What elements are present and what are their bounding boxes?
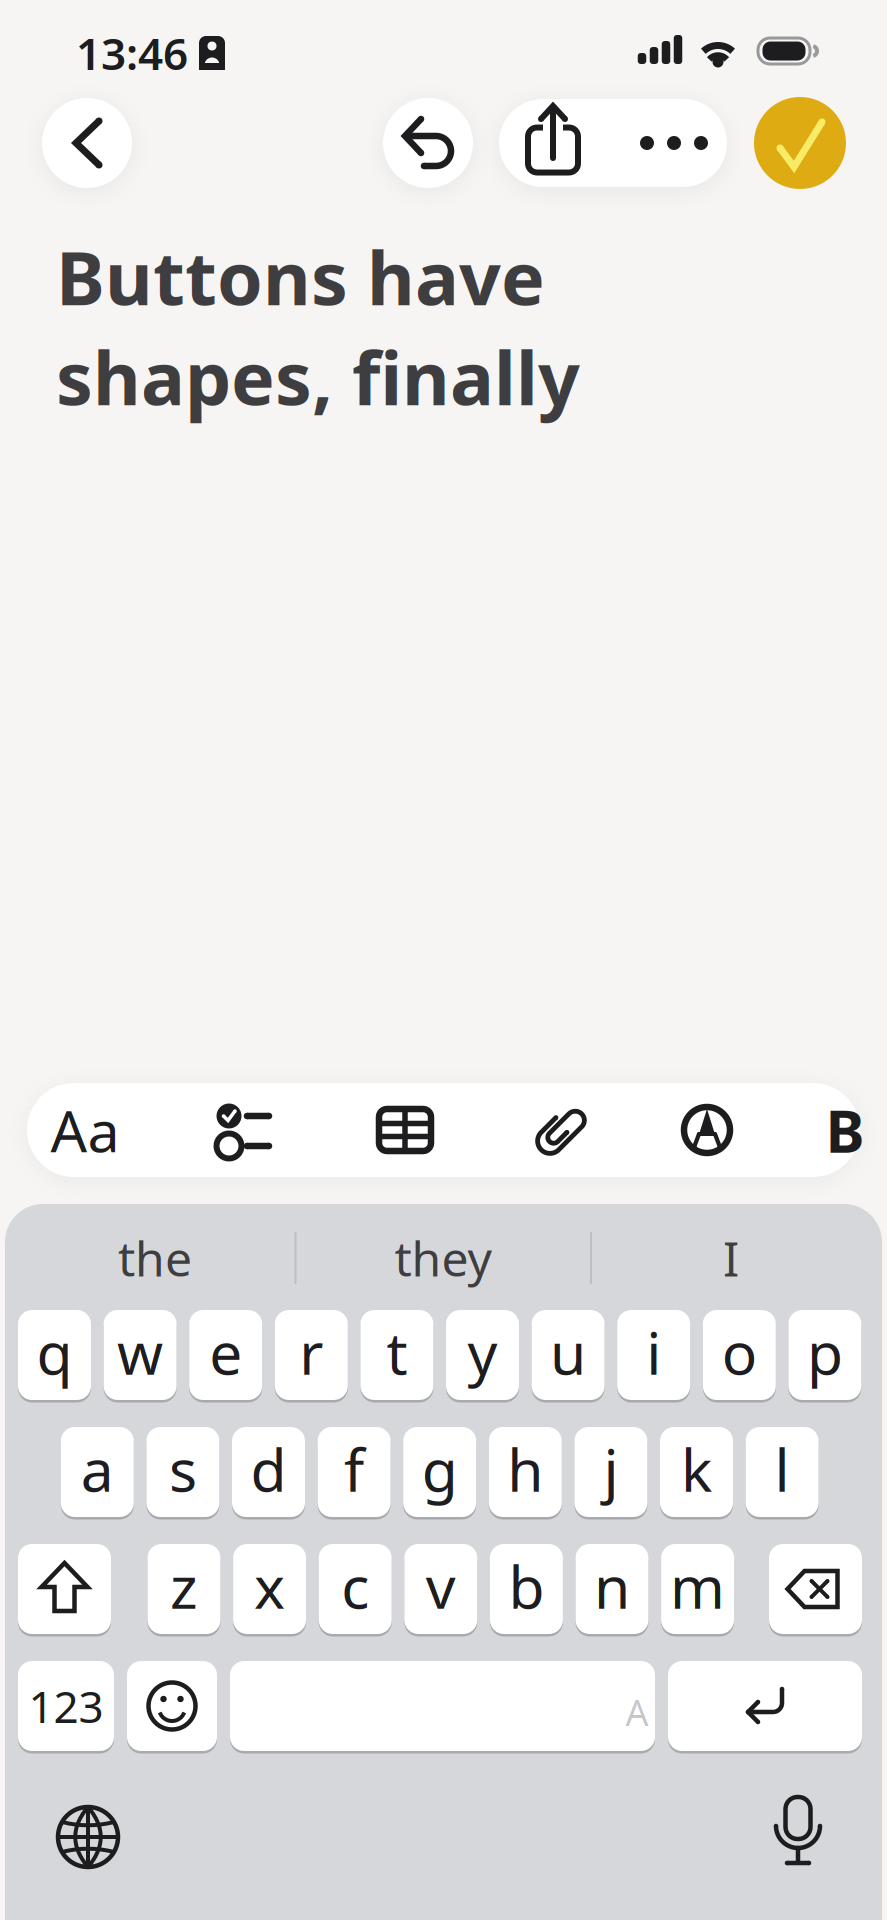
staticText: j xyxy=(603,1430,618,1508)
staticText: they xyxy=(394,1226,491,1290)
staticText: k xyxy=(681,1430,712,1508)
staticText: I xyxy=(723,1226,739,1290)
staticText: g xyxy=(422,1430,458,1508)
staticText: h xyxy=(507,1430,543,1508)
staticText: u xyxy=(550,1313,586,1391)
staticText: f xyxy=(344,1430,364,1508)
staticText: Buttons have xyxy=(56,228,545,325)
staticText: p xyxy=(807,1313,843,1391)
staticText: a xyxy=(81,1430,114,1508)
staticText: q xyxy=(36,1313,72,1391)
staticText: b xyxy=(508,1547,544,1625)
staticText: w xyxy=(117,1313,163,1391)
staticText: l xyxy=(775,1430,790,1508)
staticText: 13:46 xyxy=(76,24,188,82)
staticText: the xyxy=(118,1226,192,1290)
staticText: r xyxy=(299,1313,323,1391)
staticText: x xyxy=(254,1547,285,1625)
staticText: shapes, finally xyxy=(56,328,580,425)
staticText: z xyxy=(170,1547,198,1625)
staticText: n xyxy=(594,1547,630,1625)
staticText: s xyxy=(169,1430,197,1508)
staticText: o xyxy=(722,1313,757,1391)
staticText: m xyxy=(670,1547,725,1625)
staticText: 123 xyxy=(28,1677,103,1735)
staticText: A xyxy=(625,1688,648,1736)
staticText: i xyxy=(646,1313,661,1391)
staticText: v xyxy=(426,1547,456,1625)
staticText: e xyxy=(209,1313,242,1391)
staticText: Aa xyxy=(50,1092,119,1168)
staticText: c xyxy=(341,1547,369,1625)
staticText: B xyxy=(825,1091,864,1169)
staticText: y xyxy=(467,1313,497,1391)
staticText: d xyxy=(250,1430,286,1508)
staticText: t xyxy=(386,1313,407,1391)
